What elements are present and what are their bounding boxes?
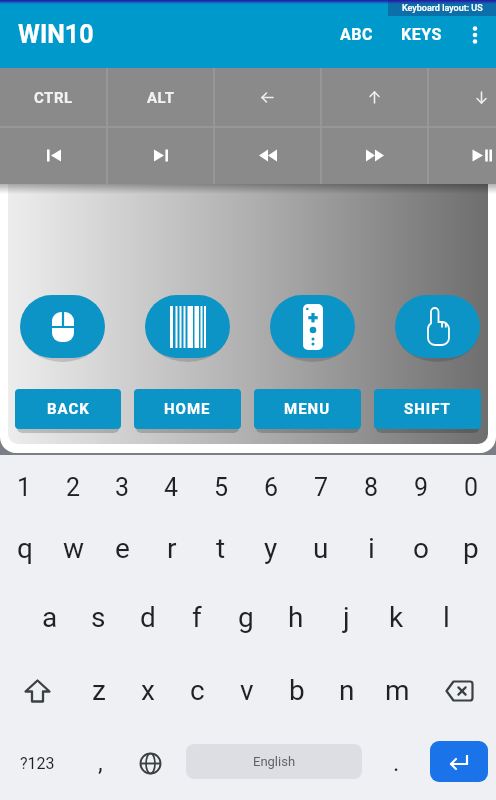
button[interactable]	[126, 726, 174, 800]
button[interactable]: 4	[147, 458, 196, 516]
staticText: p	[463, 532, 479, 565]
button[interactable]	[454, 16, 496, 53]
button[interactable]: z	[74, 655, 123, 726]
staticText: c	[190, 674, 205, 707]
button[interactable]: a	[25, 580, 74, 655]
button[interactable]: ALT	[107, 68, 214, 127]
staticText: y	[264, 532, 278, 565]
staticText: f	[192, 601, 202, 634]
button[interactable]	[0, 127, 107, 184]
staticText: 6	[264, 473, 279, 502]
staticText: b	[289, 674, 305, 707]
button[interactable]	[321, 68, 428, 127]
staticText: MENU	[284, 400, 331, 418]
staticText: 8	[364, 473, 379, 502]
button[interactable]: v	[222, 655, 272, 726]
staticText: ?123	[20, 754, 55, 773]
button[interactable]	[395, 295, 480, 358]
staticText: ,	[98, 749, 103, 777]
button[interactable]	[270, 295, 355, 358]
button[interactable]: ,	[74, 726, 126, 800]
button[interactable]: w	[49, 516, 98, 580]
staticText: ALT	[147, 89, 175, 107]
button[interactable]: r	[147, 516, 196, 580]
button[interactable]: j	[321, 580, 371, 655]
button[interactable]: t	[196, 516, 246, 580]
button[interactable]: 1	[0, 458, 49, 516]
staticText: a	[42, 601, 58, 634]
button[interactable]	[428, 68, 496, 127]
staticText: u	[313, 532, 329, 565]
staticText: m	[385, 674, 410, 707]
button[interactable]	[145, 295, 230, 358]
staticText: Keyboard layout: US	[402, 3, 483, 14]
staticText: e	[115, 532, 130, 565]
button[interactable]: 6	[246, 458, 296, 516]
button[interactable]: 0	[446, 458, 496, 516]
button[interactable]: p	[446, 516, 496, 580]
button[interactable]: x	[123, 655, 172, 726]
button[interactable]: b	[272, 655, 322, 726]
button[interactable]	[422, 655, 496, 726]
button[interactable]: h	[271, 580, 321, 655]
button[interactable]: d	[123, 580, 172, 655]
staticText: 7	[314, 473, 329, 502]
button[interactable]: MENU	[254, 389, 361, 429]
button[interactable]: 2	[49, 458, 98, 516]
button[interactable]: 3	[98, 458, 147, 516]
button[interactable]	[321, 127, 428, 184]
staticText: HOME	[164, 400, 211, 418]
staticText: SHIFT	[404, 400, 451, 418]
button[interactable]	[107, 127, 214, 184]
staticText: 3	[115, 473, 130, 502]
button[interactable]: 5	[196, 458, 246, 516]
button[interactable]	[214, 68, 321, 127]
button[interactable]: f	[172, 580, 221, 655]
button[interactable]: 7	[296, 458, 346, 516]
button[interactable]: KEYS	[401, 25, 442, 44]
button[interactable]: ?123	[0, 726, 74, 800]
button[interactable]	[428, 127, 496, 184]
button[interactable]: k	[371, 580, 421, 655]
button[interactable]: s	[74, 580, 123, 655]
button[interactable]	[430, 741, 488, 782]
button[interactable]: q	[0, 516, 49, 580]
button[interactable]: 8	[346, 458, 396, 516]
button[interactable]: c	[172, 655, 222, 726]
button[interactable]: SHIFT	[374, 389, 481, 429]
staticText: l	[443, 601, 450, 634]
staticText: h	[288, 601, 304, 634]
staticText: j	[343, 601, 350, 634]
button[interactable]: e	[98, 516, 147, 580]
button[interactable]: HOME	[134, 389, 241, 429]
button[interactable]: English	[186, 744, 362, 779]
button[interactable]: BACK	[15, 389, 121, 429]
button[interactable]: BACK	[8, 184, 488, 444]
staticText: .	[393, 749, 400, 777]
button[interactable]	[214, 127, 321, 184]
staticText: v	[240, 674, 254, 707]
button[interactable]: g	[221, 580, 271, 655]
button[interactable]: u	[296, 516, 346, 580]
staticText: 4	[164, 473, 179, 502]
staticText: s	[91, 601, 106, 634]
staticText: English	[253, 754, 296, 769]
staticText: 9	[414, 473, 429, 502]
button[interactable]: ABC	[340, 25, 373, 44]
staticText: KEYS	[401, 25, 442, 44]
button[interactable]	[0, 655, 74, 726]
staticText: 5	[214, 473, 229, 502]
button[interactable]: .	[362, 726, 430, 800]
button[interactable]: 9	[396, 458, 446, 516]
staticText: d	[140, 601, 156, 634]
button[interactable]: o	[396, 516, 446, 580]
button[interactable]: i	[346, 516, 396, 580]
staticText: CTRL	[34, 89, 73, 107]
button[interactable]: l	[421, 580, 471, 655]
staticText: 0	[464, 473, 479, 502]
button[interactable]	[20, 295, 105, 358]
button[interactable]: m	[372, 655, 422, 726]
button[interactable]: y	[246, 516, 296, 580]
button[interactable]: n	[322, 655, 372, 726]
button[interactable]: CTRL	[0, 68, 107, 127]
